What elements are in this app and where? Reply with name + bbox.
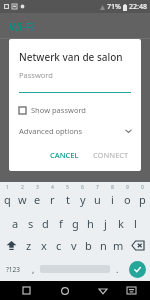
- button[interactable]: CONNECT: [89, 147, 133, 163]
- button[interactable]: 4: [45, 185, 60, 209]
- staticText: a: [12, 216, 19, 231]
- button[interactable]: m: [111, 233, 126, 257]
- staticText: Netwerk van de salon: [19, 50, 123, 64]
- staticText: p: [139, 192, 146, 207]
- button[interactable]: 7: [90, 185, 105, 209]
- staticText: o: [124, 192, 131, 207]
- button[interactable]: Back: [93, 281, 112, 300]
- button[interactable]: Home: [55, 281, 74, 300]
- button[interactable]: 2: [15, 185, 30, 209]
- staticText: b: [85, 238, 92, 253]
- button[interactable]: j: [98, 209, 113, 233]
- button[interactable]: d: [38, 209, 53, 233]
- staticText: c: [56, 238, 62, 253]
- button[interactable]: 6: [75, 185, 90, 209]
- button[interactable]: b: [81, 233, 96, 257]
- staticText: 71%: [107, 2, 121, 12]
- button[interactable]: f: [53, 209, 68, 233]
- staticText: z: [26, 238, 32, 253]
- button[interactable]: 9: [120, 185, 135, 209]
- button[interactable]: z: [22, 233, 36, 257]
- staticText: 4: [51, 184, 54, 191]
- staticText: 3: [36, 184, 39, 191]
- button[interactable]: s: [23, 209, 38, 233]
- staticText: Wi-Fi: [9, 19, 35, 34]
- staticText: e: [34, 192, 41, 207]
- button[interactable]: k: [113, 209, 128, 233]
- button[interactable]: n: [96, 233, 111, 257]
- staticText: h: [87, 216, 94, 231]
- staticText: 5: [66, 184, 69, 191]
- staticText: d: [42, 216, 49, 231]
- staticText: 2: [21, 184, 24, 191]
- staticText: CANCEL: [50, 150, 79, 160]
- staticText: 22:48: [129, 2, 147, 12]
- staticText: Password: [19, 70, 53, 80]
- button[interactable]: h: [83, 209, 98, 233]
- staticText: m: [113, 238, 124, 253]
- button[interactable]: 1: [0, 185, 15, 209]
- staticText: ?123: [6, 265, 20, 274]
- staticText: u: [94, 192, 101, 207]
- button[interactable]: x: [36, 233, 51, 257]
- staticText: i: [111, 192, 114, 207]
- button[interactable]: ,: [26, 257, 40, 281]
- button[interactable]: Advanced options: [19, 126, 133, 136]
- staticText: CONNECT: [93, 150, 129, 160]
- button[interactable]: Enter: [129, 261, 146, 278]
- button[interactable]: Recents: [17, 281, 36, 300]
- staticText: w: [18, 192, 27, 207]
- button[interactable]: 8: [105, 185, 120, 209]
- staticText: j: [104, 216, 107, 231]
- button[interactable]: Switch keyboard: [122, 281, 141, 300]
- staticText: n: [100, 238, 107, 253]
- button[interactable]: g: [68, 209, 83, 233]
- staticText: 8: [111, 184, 114, 191]
- button[interactable]: c: [51, 233, 66, 257]
- button[interactable]: v: [66, 233, 81, 257]
- button[interactable]: 0: [135, 185, 150, 209]
- staticText: f: [59, 216, 63, 231]
- staticText: v: [71, 238, 77, 253]
- staticText: r: [50, 192, 55, 207]
- staticText: 1: [6, 184, 9, 191]
- staticText: s: [28, 216, 34, 231]
- button[interactable]: Shift: [0, 233, 22, 257]
- button[interactable]: l: [128, 209, 143, 233]
- staticText: .: [116, 263, 119, 275]
- staticText: 0: [141, 184, 144, 191]
- button[interactable]: .: [110, 257, 124, 281]
- staticText: 7: [96, 184, 99, 191]
- staticText: q: [4, 192, 11, 207]
- staticText: Advanced options: [19, 126, 83, 136]
- staticText: 9: [126, 184, 129, 191]
- staticText: 6: [81, 184, 84, 191]
- staticText: ,: [32, 263, 35, 275]
- button[interactable]: 5: [60, 185, 75, 209]
- staticText: l: [134, 216, 137, 231]
- button[interactable]: ?123: [0, 257, 26, 281]
- staticText: t: [66, 192, 70, 207]
- button[interactable]: Backspace: [126, 233, 150, 257]
- button[interactable]: CANCEL: [46, 147, 83, 163]
- staticText: g: [72, 216, 79, 231]
- button[interactable]: 3: [30, 185, 45, 209]
- button[interactable]: a: [7, 209, 23, 233]
- staticText: y: [80, 192, 86, 207]
- staticText: x: [41, 238, 47, 253]
- staticText: Show password: [31, 105, 86, 115]
- button[interactable]: Show password: [19, 105, 133, 115]
- staticText: k: [118, 216, 124, 231]
